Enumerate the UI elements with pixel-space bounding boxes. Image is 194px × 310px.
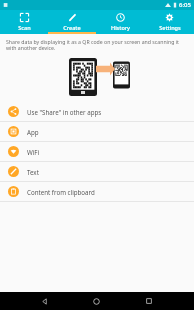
staticText: Text bbox=[27, 168, 39, 176]
other: Scan bbox=[20, 13, 29, 22]
staticText: Content from clipboard bbox=[27, 188, 95, 196]
button[interactable]: Content from clipboard bbox=[0, 182, 194, 201]
other: Settings bbox=[165, 13, 174, 22]
button[interactable]: App bbox=[0, 122, 194, 141]
button[interactable]: WiFi bbox=[0, 142, 194, 161]
button[interactable]: Text bbox=[0, 162, 194, 181]
other: App bbox=[8, 126, 19, 137]
staticText: History bbox=[111, 24, 130, 31]
button[interactable]: Recents bbox=[141, 293, 157, 309]
staticText: App bbox=[27, 128, 39, 136]
staticText: 6:05 bbox=[179, 1, 191, 9]
button[interactable]: Scan bbox=[0, 10, 48, 34]
button[interactable]: Home bbox=[88, 293, 104, 309]
button[interactable]: History bbox=[96, 10, 145, 34]
other: Text bbox=[8, 166, 19, 177]
button[interactable]: Settings bbox=[145, 10, 194, 34]
other: Share bbox=[8, 106, 19, 117]
staticText: Scan bbox=[18, 24, 31, 31]
other: WiFi bbox=[8, 146, 19, 157]
staticText: Use "Share" in other apps bbox=[27, 108, 102, 116]
other: History bbox=[116, 13, 125, 22]
staticText: Share data by displaying it as a QR code… bbox=[6, 38, 188, 52]
staticText: WiFi bbox=[27, 148, 40, 156]
other: Content from clipboard bbox=[8, 186, 19, 197]
button[interactable]: Back bbox=[36, 293, 52, 309]
button[interactable]: Create bbox=[48, 10, 96, 34]
staticText: Settings bbox=[159, 24, 181, 31]
other: Create bbox=[68, 13, 77, 22]
staticText: Create bbox=[63, 24, 81, 31]
button[interactable]: Share bbox=[0, 102, 194, 121]
